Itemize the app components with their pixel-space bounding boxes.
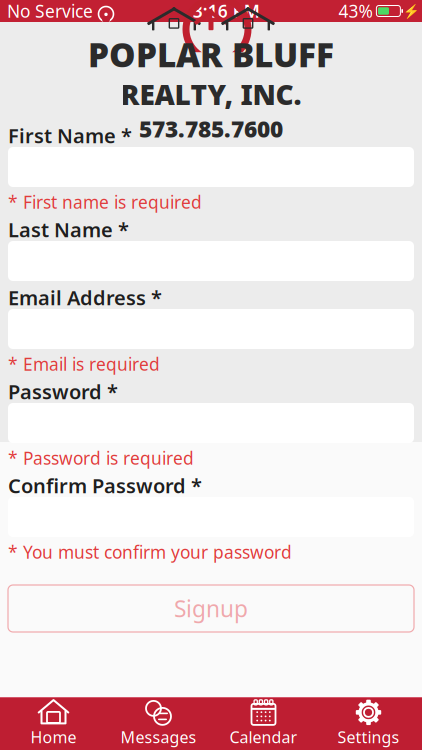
staticText: 3:16 PM [193, 0, 260, 22]
staticText: Confirm Password * [8, 472, 202, 499]
staticText: * First name is required [8, 190, 202, 213]
staticText: Messages [120, 726, 196, 748]
staticText: 43% [338, 0, 372, 22]
staticText: 573.785.7600 [139, 114, 283, 144]
staticText: POPLAR BLUFF [88, 32, 334, 76]
staticText: Home [30, 726, 76, 748]
staticText: First Name * [8, 122, 132, 149]
staticText: Email Address * [8, 284, 162, 311]
button[interactable]: Settings [316, 697, 421, 750]
staticText: Password * [8, 378, 118, 405]
staticText: Settings [337, 726, 399, 748]
button[interactable]: Messages [106, 697, 211, 750]
staticText: REALTY, INC. [120, 75, 301, 113]
button[interactable]: Signup [8, 585, 414, 632]
staticText: No Service [7, 0, 93, 22]
staticText: Calendar [229, 726, 297, 748]
staticText: * Email is required [8, 352, 160, 375]
staticText: * You must confirm your password [8, 540, 292, 563]
staticText: ⚡ [402, 3, 419, 19]
staticText: * Password is required [8, 446, 194, 469]
button[interactable]: Calendar [211, 697, 316, 750]
button[interactable]: Home [1, 697, 106, 750]
staticText: Last Name * [8, 216, 129, 243]
staticText: Signup [174, 593, 248, 623]
